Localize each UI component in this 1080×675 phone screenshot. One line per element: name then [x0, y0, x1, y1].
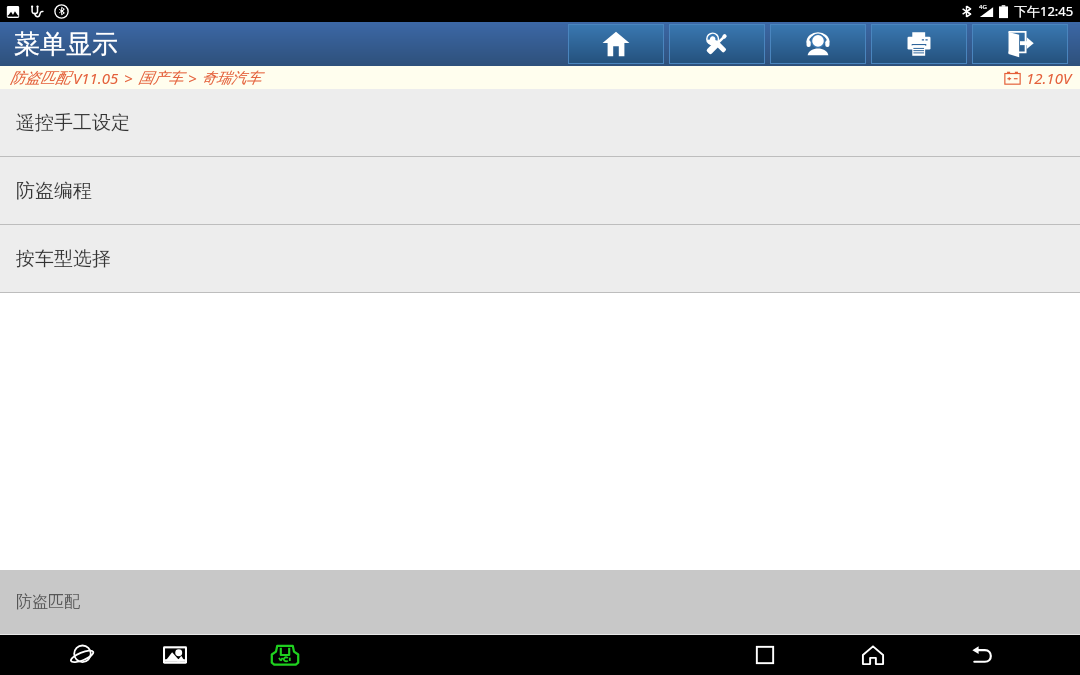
staticText: 菜单显示 [14, 28, 118, 61]
staticText: 国产车 [138, 69, 183, 88]
staticText: 下午12:45 [1014, 2, 1074, 20]
button[interactable]: Support [770, 24, 866, 64]
staticText: > [188, 68, 197, 88]
button[interactable]: Exit [972, 24, 1068, 64]
button[interactable]: 遥控手工设定 [0, 89, 1080, 156]
staticText: 防盗匹配 [10, 69, 70, 88]
staticText: 遥控手工设定 [16, 111, 130, 135]
button[interactable]: Back [958, 634, 1006, 675]
staticText: 奇瑞汽车 [201, 69, 261, 88]
staticText: 防盗匹配 [16, 592, 80, 612]
staticText: 12.10V [1026, 68, 1072, 88]
staticText: 4G [979, 3, 987, 11]
staticText: 按车型选择 [16, 247, 111, 271]
button[interactable]: 防盗匹配 [0, 570, 1080, 634]
button[interactable]: Gallery [151, 634, 199, 675]
button[interactable]: 按车型选择 [0, 225, 1080, 292]
button[interactable]: Print [871, 24, 967, 64]
button[interactable]: Home [568, 24, 664, 64]
staticText: V11.05 [73, 68, 119, 88]
staticText: > [124, 68, 133, 88]
staticText: 防盗编程 [16, 179, 92, 203]
button[interactable]: Home [849, 634, 897, 675]
button[interactable]: Tools [669, 24, 765, 64]
button[interactable]: Browser [58, 634, 106, 675]
button[interactable]: VCI [261, 634, 309, 675]
button[interactable]: Recents [741, 634, 789, 675]
button[interactable]: 防盗编程 [0, 157, 1080, 224]
